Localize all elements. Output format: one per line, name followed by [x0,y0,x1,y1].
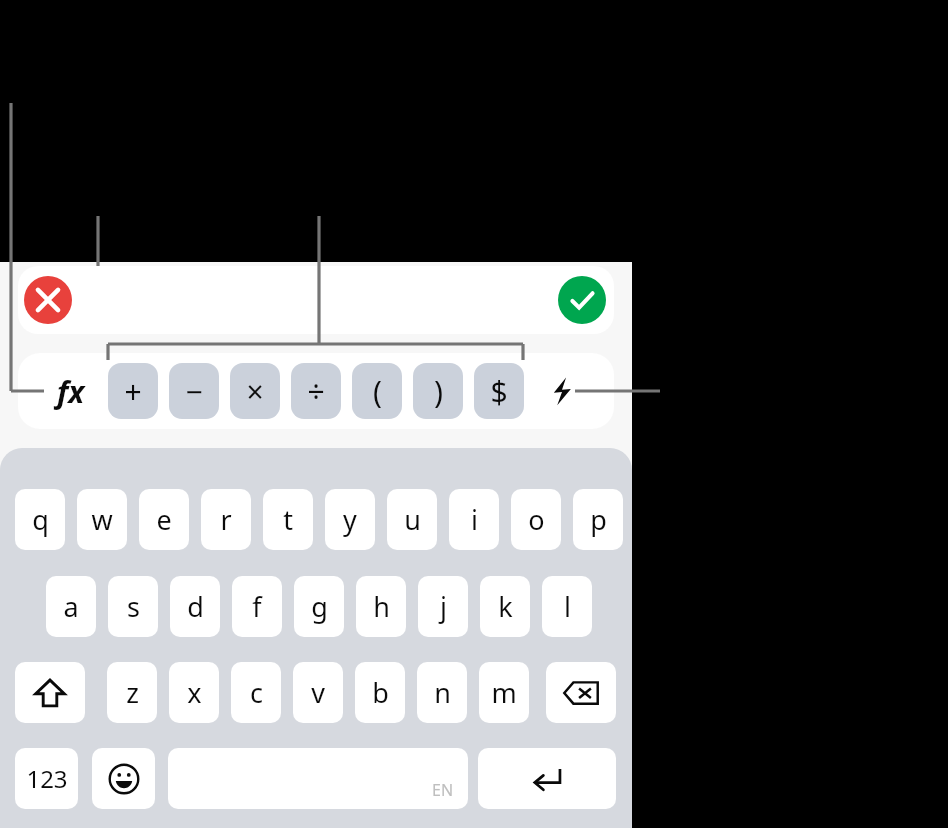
staticText: $ [490,371,508,412]
staticText: d [187,588,204,625]
button[interactable]: a [46,576,96,637]
button[interactable]: v [293,662,343,723]
button[interactable]: − [169,363,219,419]
staticText: × [246,371,264,412]
button[interactable]: Shortcuts [538,363,586,419]
button[interactable]: g [294,576,344,637]
button[interactable]: Accept [558,276,606,324]
staticText: ÷ [307,371,325,412]
staticText: v [311,674,325,711]
staticText: y [343,501,357,538]
button[interactable]: 123 [15,748,78,809]
staticText: u [404,501,421,538]
button[interactable]: k [480,576,530,637]
button[interactable]: ) [413,363,463,419]
button[interactable]: y [325,489,375,550]
button[interactable]: u [387,489,437,550]
staticText: fx [57,371,85,412]
staticText: j [440,588,447,625]
button[interactable]: Cancel [24,276,72,324]
staticText: g [311,588,328,625]
staticText: q [32,501,49,538]
button[interactable]: r [201,489,251,550]
staticText: t [283,501,293,538]
staticText: b [372,674,389,711]
staticText: 123 [26,762,68,795]
button[interactable]: Backspace [546,662,616,723]
button[interactable]: e [139,489,189,550]
button[interactable]: o [511,489,561,550]
button[interactable]: × [230,363,280,419]
staticText: a [63,588,79,625]
button[interactable]: fx [48,363,94,419]
staticText: m [491,674,517,711]
button[interactable]: f [232,576,282,637]
staticText: o [528,501,545,538]
staticText: h [373,588,390,625]
button[interactable]: p [573,489,623,550]
button[interactable]: w [77,489,127,550]
staticText: + [124,371,142,412]
button[interactable]: Return [478,748,616,809]
button[interactable]: c [231,662,281,723]
button[interactable]: $ [474,363,524,419]
staticText: ( [373,371,382,412]
staticText: x [187,674,202,711]
button[interactable]: Emoji [92,748,155,809]
staticText: f [252,588,262,625]
button[interactable]: ÷ [291,363,341,419]
button[interactable]: j [418,576,468,637]
staticText: EN [432,779,454,801]
button[interactable]: d [170,576,220,637]
staticText: p [590,501,607,538]
button[interactable]: x [169,662,219,723]
staticText: n [434,674,451,711]
staticText: l [564,588,571,625]
staticText: − [185,371,203,412]
button[interactable]: n [417,662,467,723]
button[interactable]: Space [168,748,468,809]
button[interactable]: + [108,363,158,419]
button[interactable]: t [263,489,313,550]
staticText: i [471,501,478,538]
button[interactable]: m [479,662,529,723]
button[interactable]: z [107,662,157,723]
staticText: k [498,588,513,625]
button[interactable]: i [449,489,499,550]
staticText: ) [434,371,443,412]
button[interactable]: Shift [15,662,85,723]
staticText: r [220,501,232,538]
button[interactable]: h [356,576,406,637]
button[interactable]: s [108,576,158,637]
staticText: c [250,674,263,711]
button[interactable]: l [542,576,592,637]
staticText: e [156,501,172,538]
staticText: w [91,501,113,538]
staticText: z [126,674,139,711]
staticText: s [127,588,140,625]
button[interactable]: q [15,489,65,550]
button[interactable]: ( [352,363,402,419]
button[interactable]: b [355,662,405,723]
